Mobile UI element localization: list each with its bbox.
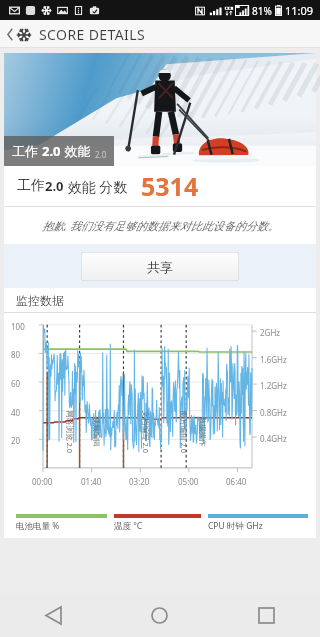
- staticText: 40: [11, 407, 21, 418]
- staticText: 20: [11, 435, 21, 446]
- staticText: 视频编辑: [91, 416, 100, 446]
- staticText: 11:09: [285, 3, 314, 18]
- button[interactable]: Back: [0, 593, 106, 637]
- button[interactable]: CPU 时钟 GHz: [208, 514, 308, 532]
- staticText: 05:00: [178, 476, 199, 487]
- staticText: 60: [11, 378, 21, 389]
- staticText: 100: [11, 321, 25, 332]
- staticText: 80: [11, 349, 21, 360]
- staticText: 1.2GHz: [260, 380, 287, 391]
- staticText: 81%: [252, 4, 272, 18]
- button[interactable]: Back: [4, 21, 149, 48]
- staticText: 文档编写 2.0: [140, 410, 150, 453]
- staticText: 效能 分数: [64, 177, 128, 196]
- staticText: SCORE DETAILS: [39, 25, 146, 44]
- staticText: 共享: [147, 259, 173, 275]
- staticText: 网络浏览 2.0: [64, 410, 74, 453]
- button[interactable]: 温度 °C: [114, 514, 201, 532]
- staticText: 温度 °C: [114, 520, 143, 532]
- staticText: 电池电量 %: [16, 520, 60, 532]
- staticText: 图片编辑 2.0: [178, 410, 188, 453]
- staticText: 1.6GHz: [260, 354, 287, 365]
- staticText: 2.0: [45, 177, 64, 195]
- staticText: CPU 时钟 GHz: [208, 520, 263, 532]
- staticText: 0.4GHz: [260, 433, 287, 444]
- button[interactable]: 共享: [81, 252, 239, 281]
- button[interactable]: 工作: [4, 53, 316, 166]
- staticText: 00:00: [32, 476, 53, 487]
- staticText: 监控数据: [16, 293, 64, 308]
- button[interactable]: 电池电量 %: [16, 514, 107, 532]
- staticText: 效能: [61, 142, 91, 160]
- staticText: 5314: [141, 169, 199, 203]
- staticText: 0.8GHz: [260, 407, 287, 418]
- staticText: 工作: [12, 142, 42, 160]
- staticText: 03:20: [129, 476, 150, 487]
- staticText: 01:40: [81, 476, 102, 487]
- staticText: 06:40: [226, 476, 247, 487]
- staticText: 2.0: [95, 149, 107, 160]
- staticText: 抱歉, 我们没有足够的数据来对比此设备的分数。: [42, 218, 279, 233]
- button[interactable]: Home: [106, 593, 213, 637]
- staticText: 2GHz: [260, 327, 281, 338]
- staticText: 数据操作: [197, 416, 206, 446]
- staticText: 2.0: [42, 142, 61, 160]
- button[interactable]: Recent apps: [213, 593, 320, 637]
- staticText: 工作: [17, 177, 45, 195]
